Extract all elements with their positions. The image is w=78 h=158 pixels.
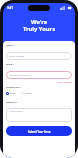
staticText: Esther Howard	[9, 55, 25, 58]
staticText: 9:41	[7, 6, 13, 10]
staticText: Error Message	[6, 81, 72, 84]
button[interactable]: Submit Your Form	[6, 126, 72, 136]
button[interactable]: Phone	[21, 92, 32, 95]
staticText: Email	[10, 92, 16, 95]
staticText: Address *	[6, 101, 17, 104]
staticText: Submit Your Form	[28, 130, 51, 133]
staticText: company@mail.com	[9, 74, 30, 77]
staticText: Phone	[25, 92, 32, 95]
staticText: Write address	[9, 110, 24, 113]
staticText: Name *	[6, 44, 15, 47]
staticText: Truly Yours	[3, 25, 75, 33]
staticText: Email *	[6, 63, 15, 66]
staticText: We're	[3, 18, 75, 26]
button[interactable]: company@mail.com	[6, 71, 72, 79]
button[interactable]: Esther Howard	[6, 52, 72, 60]
button[interactable]: Write address	[6, 108, 72, 122]
staticText: Contact via *	[6, 86, 21, 89]
button[interactable]: Email	[6, 92, 16, 95]
